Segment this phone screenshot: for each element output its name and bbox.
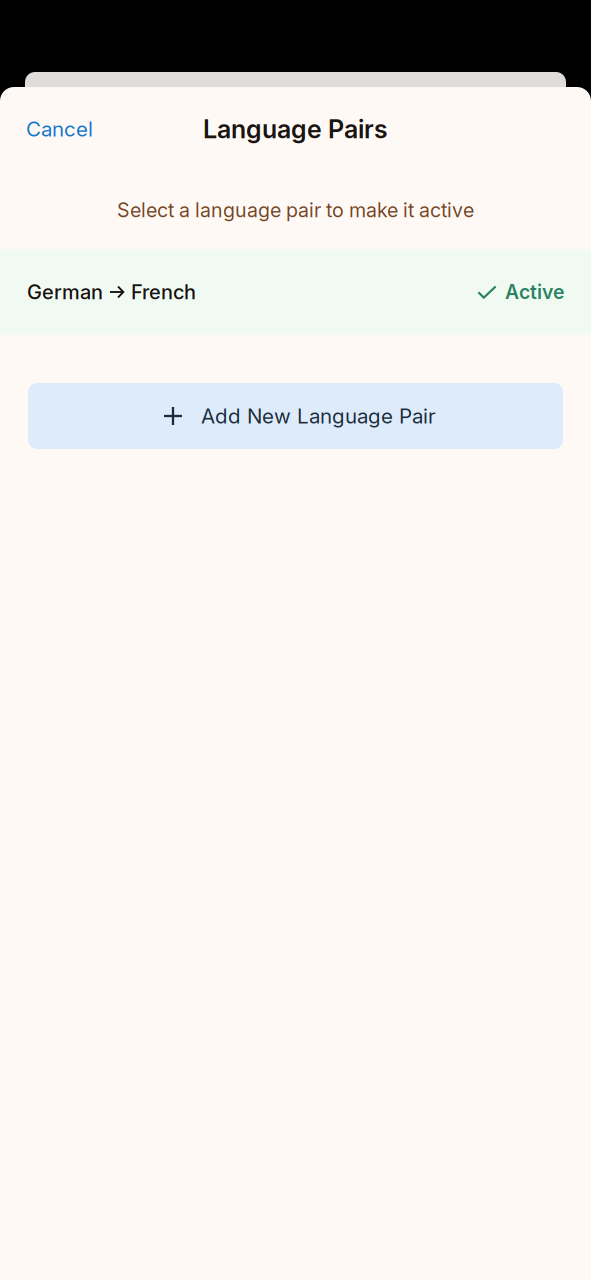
staticText: German: [27, 280, 103, 304]
staticText: Add New Language Pair: [201, 403, 436, 428]
button[interactable]: Add New Language Pair: [0, 383, 591, 449]
staticText: Select a language pair to make it active: [117, 198, 474, 222]
staticText: French: [131, 280, 196, 304]
button[interactable]: German: [0, 249, 591, 335]
staticText: Active: [505, 280, 564, 304]
staticText: Cancel: [26, 117, 93, 141]
button[interactable]: Cancel: [26, 117, 93, 141]
staticText: Language Pairs: [203, 114, 388, 144]
